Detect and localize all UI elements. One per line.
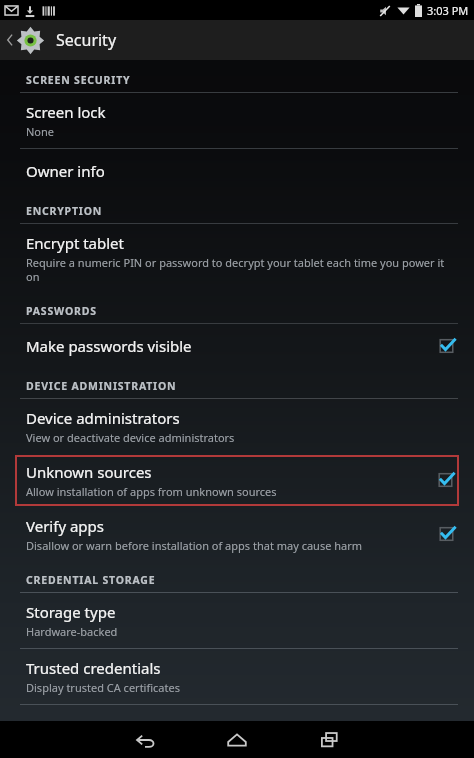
staticText: Hardware-backed [26,624,118,639]
staticText: Display trusted CA certificates [26,680,180,695]
button[interactable]: Screen lock [0,93,474,149]
staticText: Storage type [26,602,116,622]
button[interactable]: Device administrators [0,399,474,454]
staticText: SCREEN SECURITY [26,73,131,87]
staticText: Device administrators [26,408,180,428]
staticText: Require a numeric PIN or password to dec… [26,255,456,284]
staticText: View or deactivate device administrators [26,430,235,445]
button[interactable]: Home [191,721,283,758]
button[interactable]: Up, Security [0,20,474,60]
staticText: PASSWORDS [26,304,97,318]
staticText: Disallow or warn before installation of … [26,538,363,553]
button[interactable]: Unknown sources [15,455,459,506]
staticText: Screen lock [26,102,106,122]
button[interactable]: Recent apps [283,721,375,758]
staticText: CREDENTIAL STORAGE [26,573,156,587]
staticText: Unknown sources [26,462,152,482]
button[interactable]: Make passwords visible [0,324,474,368]
staticText: Allow installation of apps from unknown … [26,484,277,499]
staticText: Owner info [26,161,105,181]
staticText: Trusted credentials [26,658,161,678]
staticText: Verify apps [26,516,104,536]
staticText: Make passwords visible [26,336,192,356]
button[interactable]: Encrypt tablet [0,224,474,293]
button[interactable]: Trusted credentials [0,649,474,705]
staticText: ENCRYPTION [26,204,103,218]
staticText: Encrypt tablet [26,233,124,253]
staticText: Security [56,29,117,51]
button[interactable]: Storage type [0,593,474,649]
staticText: None [26,124,55,139]
staticText: 3:03 PM [427,3,469,18]
button[interactable]: Back [99,721,191,758]
button[interactable]: Owner info [0,149,474,193]
button[interactable]: Verify apps [0,507,474,562]
staticText: DEVICE ADMINISTRATION [26,379,177,393]
